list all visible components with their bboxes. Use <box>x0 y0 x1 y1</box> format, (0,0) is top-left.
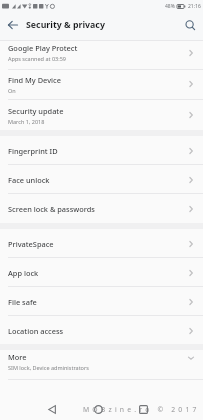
button[interactable]: Google Play Protect <box>0 41 203 70</box>
staticText: Location access <box>8 326 64 336</box>
button[interactable]: Location access <box>0 316 203 344</box>
button[interactable]: File safe <box>0 287 203 316</box>
staticText: Apps scanned at 03:59 <box>8 55 66 62</box>
staticText: Find My Device <box>8 75 61 85</box>
button[interactable] <box>181 16 199 34</box>
staticText: 48% <box>165 3 175 10</box>
button[interactable]: Security update <box>0 100 203 130</box>
staticText: Security & privacy <box>26 19 105 31</box>
button[interactable]: Screen lock & passwords <box>0 194 203 223</box>
staticText: 21:16 <box>188 3 201 10</box>
staticText: Face unlock <box>8 175 50 185</box>
button[interactable] <box>89 400 107 418</box>
staticText: PrivateSpace <box>8 239 54 249</box>
staticText: More <box>8 352 27 362</box>
staticText: MOBzine.ro © 2017 <box>83 405 200 414</box>
button[interactable]: PrivateSpace <box>0 229 203 258</box>
button[interactable] <box>43 400 61 418</box>
staticText: On <box>8 87 16 94</box>
button[interactable]: Fingerprint ID <box>0 136 203 165</box>
staticText: March 1, 2018 <box>8 118 45 125</box>
staticText: Security update <box>8 106 64 116</box>
button[interactable]: App lock <box>0 258 203 287</box>
staticText: SIM lock, Device administrators <box>8 364 89 371</box>
button[interactable]: Find My Device <box>0 70 203 100</box>
staticText: App lock <box>8 268 39 278</box>
button[interactable] <box>4 16 22 34</box>
staticText: File safe <box>8 297 37 307</box>
button[interactable]: Face unlock <box>0 165 203 194</box>
button[interactable]: More <box>0 350 203 380</box>
staticText: Fingerprint ID <box>8 146 58 156</box>
staticText: Google Play Protect <box>8 43 78 53</box>
button[interactable] <box>134 400 152 418</box>
staticText: Screen lock & passwords <box>8 204 95 214</box>
